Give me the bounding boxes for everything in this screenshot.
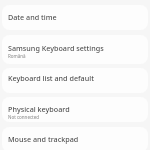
- staticText: Date and time: [8, 12, 57, 22]
- button[interactable]: Physical keyboard: [2, 97, 148, 122]
- button[interactable]: Mouse and trackpad: [2, 127, 148, 150]
- staticText: Not connected: [8, 114, 40, 120]
- staticText: Mouse and trackpad: [8, 134, 79, 144]
- button[interactable]: Samsung Keyboard settings: [2, 35, 148, 64]
- staticText: Keyboard list and default: [8, 73, 94, 83]
- staticText: Samsung Keyboard settings: [8, 43, 104, 53]
- button[interactable]: Keyboard list and default: [2, 68, 148, 93]
- staticText: Română: [8, 53, 26, 59]
- staticText: Physical keyboard: [8, 104, 70, 114]
- button[interactable]: Date and time: [2, 5, 148, 30]
